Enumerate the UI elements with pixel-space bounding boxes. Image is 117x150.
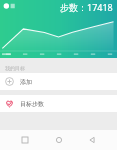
button[interactable]: Add goal [0, 73, 117, 90]
staticText: 添加 [20, 78, 32, 86]
button[interactable]: Back [83, 131, 101, 149]
button[interactable]: Home [50, 131, 68, 149]
staticText: 我的目标 [5, 65, 25, 71]
other: Target steps [5, 99, 14, 108]
button[interactable]: Recent apps [16, 131, 34, 149]
staticText: 目标步数 [20, 100, 44, 108]
button[interactable]: Target steps [0, 95, 117, 112]
other: Add goal [5, 77, 14, 86]
staticText: 步数：17418 [60, 1, 113, 13]
